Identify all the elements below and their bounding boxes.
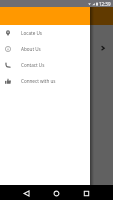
button[interactable]: About Us bbox=[0, 41, 90, 57]
staticText: Locate Us bbox=[21, 30, 42, 36]
button[interactable]: Locate Us bbox=[0, 25, 90, 41]
staticText: Connect with us bbox=[21, 78, 56, 84]
button[interactable]: Recent apps bbox=[81, 188, 92, 199]
button[interactable]: Home bbox=[51, 188, 62, 199]
button[interactable]: Connect with us bbox=[0, 73, 90, 89]
staticText: Contact Us bbox=[21, 62, 45, 68]
button[interactable]: Back bbox=[21, 188, 32, 199]
staticText: About Us bbox=[21, 46, 41, 52]
button[interactable]: Expand bbox=[100, 45, 106, 51]
staticText: 12:39 bbox=[99, 1, 111, 7]
button[interactable] bbox=[0, 0, 113, 200]
button[interactable]: Contact Us bbox=[0, 57, 90, 73]
